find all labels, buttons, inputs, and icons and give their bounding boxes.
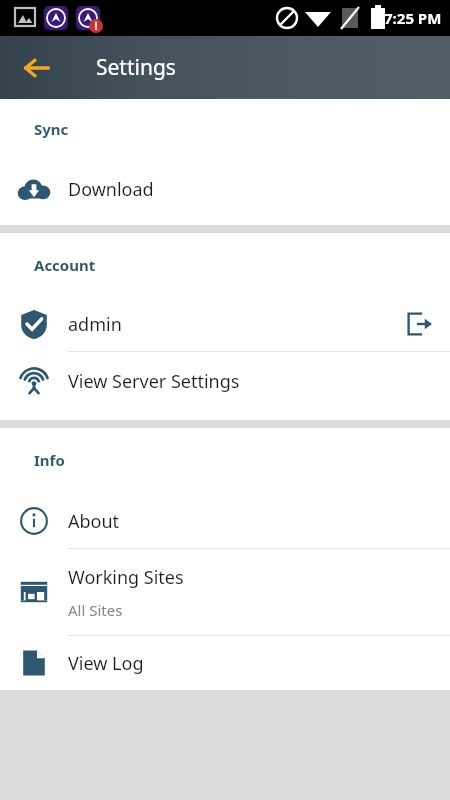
staticText: Info bbox=[34, 450, 65, 470]
staticText: About bbox=[68, 509, 120, 534]
button[interactable]: View Log bbox=[0, 636, 450, 690]
button[interactable]: About bbox=[0, 494, 450, 548]
staticText: 7:25 PM bbox=[384, 8, 442, 28]
staticText: View Server Settings bbox=[68, 369, 240, 394]
staticText: Settings bbox=[96, 53, 176, 82]
button[interactable]: View Server Settings bbox=[0, 352, 450, 410]
staticText: Download bbox=[68, 177, 154, 202]
button[interactable]: Log out bbox=[388, 297, 450, 351]
staticText: Working Sites bbox=[68, 565, 184, 590]
staticText: Account bbox=[34, 255, 96, 275]
staticText: Sync bbox=[34, 119, 69, 139]
button[interactable]: admin bbox=[0, 297, 450, 351]
button[interactable]: Working Sites bbox=[0, 549, 450, 635]
staticText: View Log bbox=[68, 651, 144, 676]
button[interactable]: Download bbox=[0, 161, 450, 217]
button[interactable]: Back bbox=[10, 41, 64, 95]
staticText: admin bbox=[68, 312, 122, 337]
staticText: All Sites bbox=[68, 600, 123, 620]
